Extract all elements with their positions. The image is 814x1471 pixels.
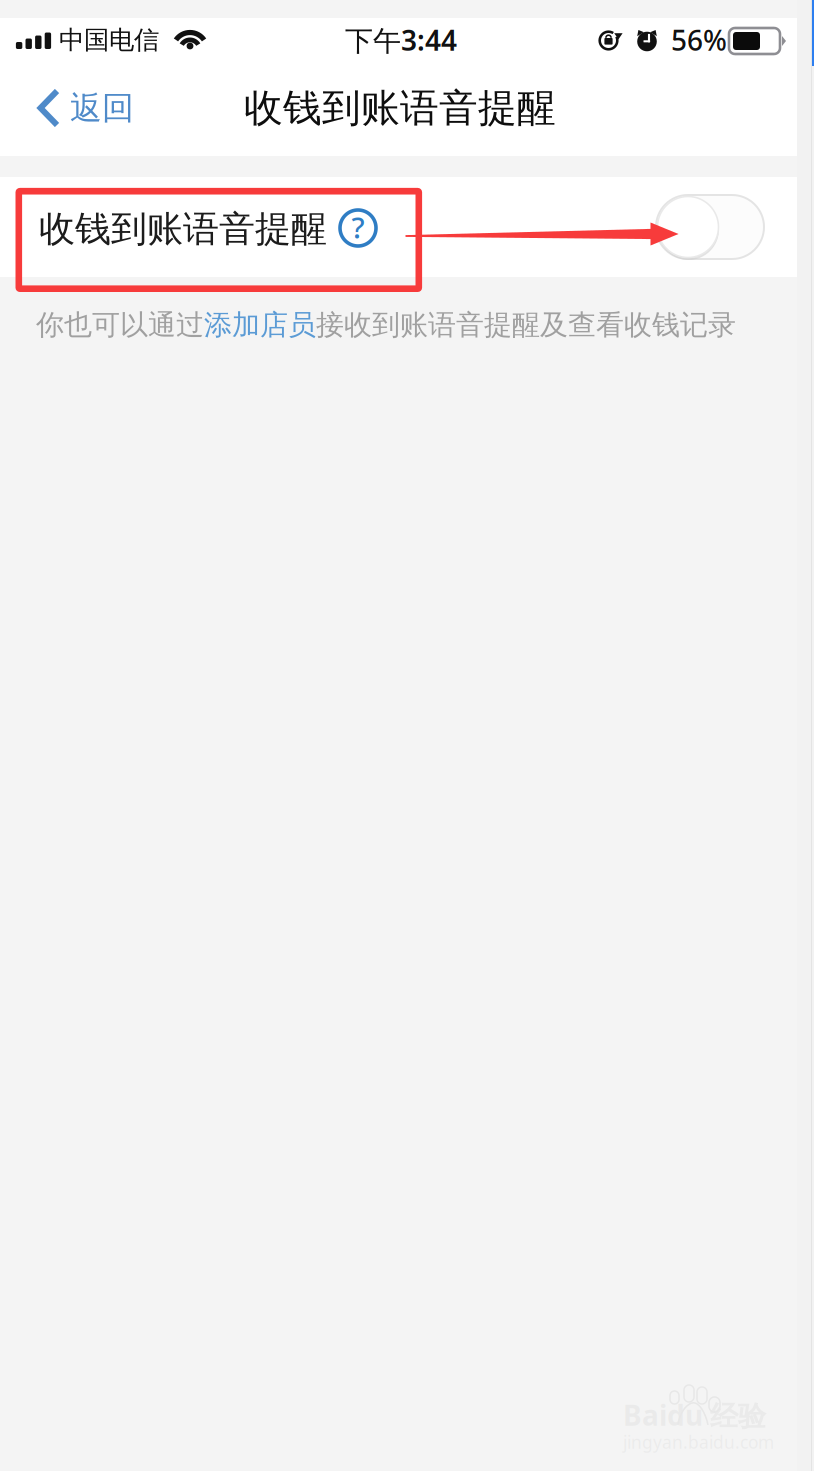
staticText: 返回 xyxy=(70,88,134,128)
staticText: 你也可以通过 xyxy=(36,308,204,342)
staticText: 接收到账语音提醒及查看收钱记录 xyxy=(316,308,736,342)
staticText: 下午3:44 xyxy=(345,21,457,59)
staticText: 56% xyxy=(671,21,727,59)
staticText: ? xyxy=(351,207,364,246)
staticText: 中国电信 xyxy=(59,24,159,55)
staticText: 收钱到账语音提醒 xyxy=(39,207,327,251)
button[interactable]: 返回 xyxy=(37,79,162,137)
button[interactable]: 收钱到账语音提醒开关 xyxy=(656,195,764,259)
button[interactable]: 说明 xyxy=(336,206,380,250)
staticText: 添加店员 xyxy=(204,308,316,342)
button[interactable]: 添加店员 xyxy=(204,308,316,342)
staticText: Baidu 经验 xyxy=(623,1396,766,1434)
staticText: 收钱到账语音提醒 xyxy=(244,84,556,132)
